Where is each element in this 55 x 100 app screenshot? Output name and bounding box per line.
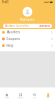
staticText: Member benefits (5, 24, 29, 28)
staticText: 9:41 (2, 0, 9, 4)
button[interactable]: Member benefits (3, 24, 52, 28)
staticText: Nickname (20, 18, 35, 21)
staticText: Cart (33, 97, 36, 99)
staticText: Home (5, 97, 9, 99)
button[interactable]: Coupons (0, 36, 55, 42)
staticText: Me (47, 97, 49, 99)
button[interactable]: My orders (0, 29, 55, 36)
button[interactable]: Category (14, 87, 28, 100)
staticText: Category (17, 97, 24, 99)
button[interactable]: Me (41, 87, 55, 100)
staticText: My orders (7, 31, 20, 34)
button[interactable]: Help (0, 42, 55, 49)
staticText: Help (7, 44, 14, 47)
staticText: Coupons (7, 37, 20, 41)
button[interactable]: Home (0, 87, 14, 100)
staticText: Activate (39, 24, 50, 28)
button[interactable]: Cart (27, 87, 41, 100)
